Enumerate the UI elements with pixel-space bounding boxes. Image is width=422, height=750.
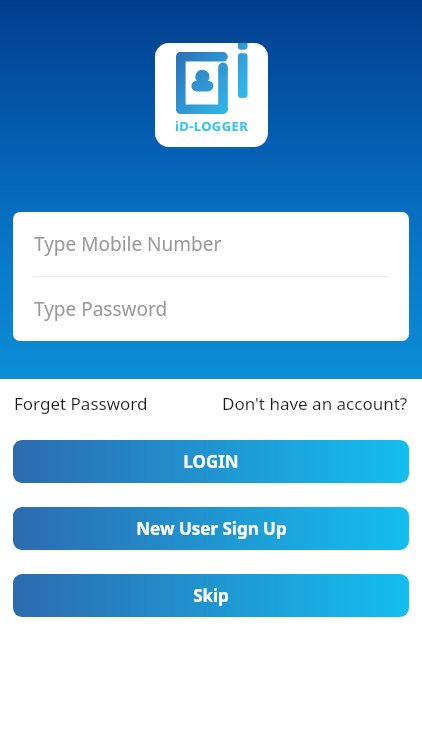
staticText: Skip — [193, 584, 229, 607]
button[interactable]: Type Mobile Number — [13, 212, 409, 276]
button[interactable]: Skip — [13, 574, 409, 617]
staticText: New User Sign Up — [136, 517, 287, 540]
staticText: Type Password — [34, 296, 168, 322]
button[interactable]: LOGIN — [13, 440, 409, 483]
button[interactable]: Don't have an account? — [222, 392, 408, 415]
staticText: Forget Password — [14, 392, 148, 415]
staticText: Type Mobile Number — [34, 231, 222, 257]
staticText: LOGIN — [183, 450, 239, 473]
staticText: iD-LOGGER — [175, 117, 249, 135]
button[interactable]: iD-LOGGER logo — [155, 43, 268, 147]
staticText: Don't have an account? — [222, 392, 408, 415]
button[interactable]: Forget Password — [14, 392, 148, 415]
button[interactable]: Type Password — [13, 277, 409, 341]
button[interactable]: New User Sign Up — [13, 507, 409, 550]
